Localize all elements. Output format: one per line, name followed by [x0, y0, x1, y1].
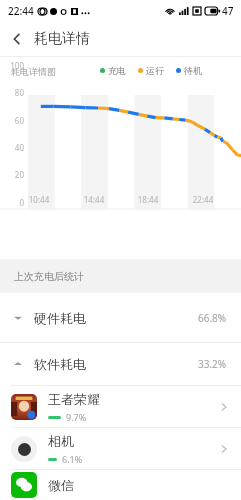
button[interactable]: 王者荣耀: [0, 386, 241, 427]
staticText: 80: [0, 87, 24, 98]
button[interactable]: 硬件耗电: [0, 293, 241, 342]
other: Details: [219, 444, 229, 454]
staticText: 22:44: [183, 194, 223, 205]
staticText: 软件耗电: [34, 356, 86, 372]
staticText: 47: [222, 4, 234, 18]
staticText: 100: [0, 60, 24, 71]
staticText: 60: [0, 115, 24, 126]
staticText: 20: [0, 169, 24, 180]
staticText: 9.7%: [66, 411, 87, 423]
staticText: 上次充电后统计: [14, 270, 84, 283]
staticText: 33.2%: [198, 357, 227, 371]
staticText: O: [60, 5, 68, 17]
staticText: 66.8%: [198, 311, 227, 325]
button[interactable]: Back: [0, 22, 34, 56]
button[interactable]: 软件耗电: [0, 343, 241, 385]
staticText: 王者荣耀: [48, 391, 100, 407]
staticText: 0: [0, 197, 24, 208]
staticText: 40: [0, 142, 24, 153]
other: Details: [219, 402, 229, 412]
staticText: 18:44: [128, 194, 168, 205]
staticText: 耗电详情: [34, 30, 90, 48]
button[interactable]: 相机: [0, 428, 241, 469]
staticText: 硬件耗电: [34, 310, 86, 326]
button[interactable]: 微信: [0, 470, 241, 500]
staticText: 微信: [48, 477, 74, 493]
staticText: 充电: [108, 65, 126, 76]
staticText: 相机: [48, 433, 74, 449]
staticText: 22:44: [8, 4, 34, 18]
staticText: 运行: [146, 65, 164, 76]
staticText: 待机: [184, 65, 202, 76]
staticText: 14:44: [74, 194, 114, 205]
staticText: 耗电详情图: [11, 66, 56, 77]
staticText: 6.1%: [62, 453, 83, 465]
staticText: 10:44: [19, 194, 59, 205]
